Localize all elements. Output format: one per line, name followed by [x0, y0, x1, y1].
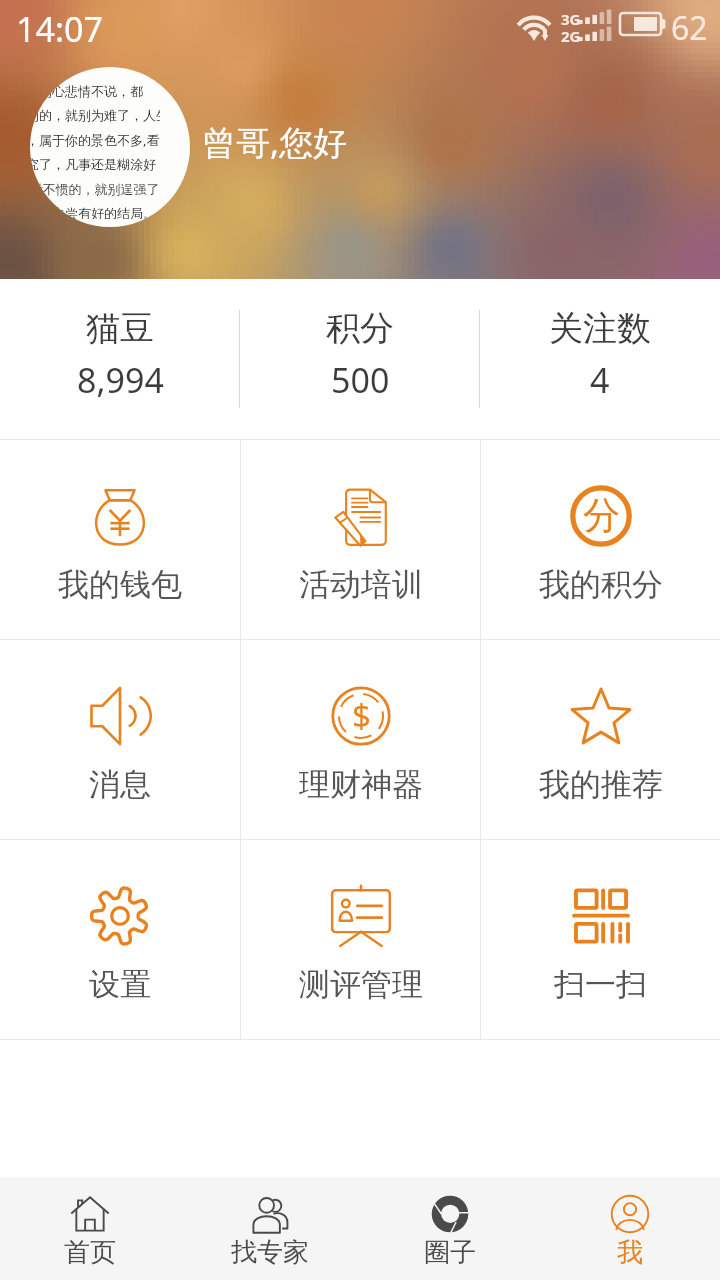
staticText: 消息 [89, 765, 151, 804]
button[interactable]: 设置 [0, 840, 240, 1039]
staticText: 圈子 [424, 1236, 476, 1269]
staticText: 测评管理 [299, 965, 423, 1004]
button[interactable]: 我 [540, 1178, 720, 1280]
staticText: 14:07 [16, 6, 103, 52]
staticText: 我的积分 [539, 565, 663, 604]
staticText: 曾哥,您好 [202, 119, 348, 165]
staticText: 积分 [326, 307, 394, 350]
button[interactable]: 积分 [240, 279, 480, 439]
staticText: $ [352, 693, 371, 738]
staticText: 3G [561, 9, 581, 29]
button[interactable]: 首页 [0, 1178, 180, 1280]
button[interactable]: 圈子 [360, 1178, 540, 1280]
button[interactable]: 找专家 [180, 1178, 360, 1280]
staticText: 活动培训 [299, 565, 423, 604]
staticText: 扫一扫 [554, 965, 647, 1004]
staticText: 我 [617, 1236, 643, 1269]
staticText: 4 [590, 357, 610, 403]
staticText: 2G [561, 26, 581, 46]
button[interactable]: 活动培训 [241, 440, 480, 639]
staticText: 关注数 [549, 307, 651, 350]
staticText: 理财神器 [299, 765, 423, 804]
staticText: 首页 [64, 1236, 116, 1269]
button[interactable]: 关注数 [480, 279, 720, 439]
staticText: 找专家 [231, 1236, 309, 1269]
staticText: 我的推荐 [539, 765, 663, 804]
button[interactable]: 分 [481, 440, 720, 639]
button[interactable]: 我的钱包 [0, 440, 240, 639]
staticText: 设置 [89, 965, 151, 1004]
button[interactable]: 扫一扫 [481, 840, 720, 1039]
button[interactable]: 消息 [0, 640, 240, 839]
staticText: 62 [671, 6, 708, 50]
button[interactable]: 我的推荐 [481, 640, 720, 839]
staticText: 的为难题 揭懂，伤心悲情不说，都 看不到的，就别为难了，人生都 行线，属于你的景… [30, 67, 160, 219]
staticText: 我的钱包 [58, 565, 182, 604]
button[interactable]: Avatar [30, 67, 190, 227]
staticText: 500 [331, 357, 390, 403]
button[interactable]: $ [241, 640, 480, 839]
staticText: 分 [583, 492, 620, 539]
staticText: 猫豆 [86, 307, 154, 350]
staticText: 8,994 [77, 357, 164, 403]
button[interactable]: 猫豆 [0, 279, 240, 439]
button[interactable]: 测评管理 [241, 840, 480, 1039]
